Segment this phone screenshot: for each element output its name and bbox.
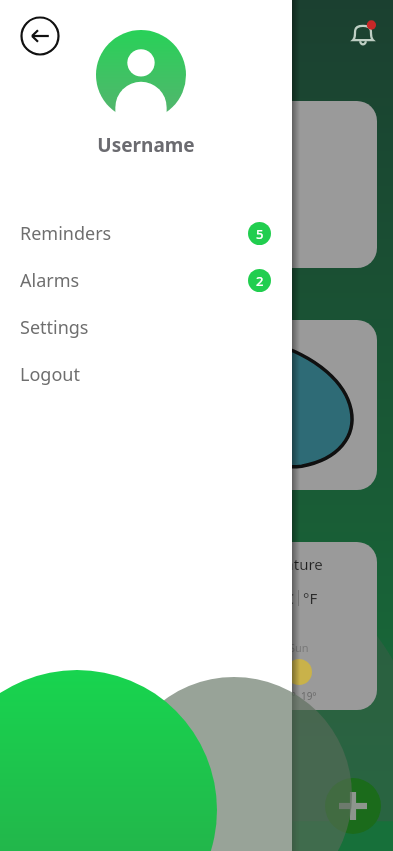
button[interactable]: Alarms	[0, 263, 292, 297]
button[interactable]: Settings	[0, 310, 292, 344]
staticText: Logout	[20, 362, 80, 387]
button[interactable]: MyPlant Rooms	[220, 101, 377, 268]
staticText: Alarms	[20, 268, 80, 293]
staticText: Username	[0, 132, 292, 158]
staticText: 5	[256, 225, 264, 243]
button[interactable]	[220, 320, 377, 490]
staticText: 34° 19°	[280, 689, 317, 703]
staticText: Reminders	[20, 221, 112, 246]
button[interactable]: Add	[325, 778, 381, 834]
staticText: °C	[278, 588, 294, 608]
button[interactable]: Back	[20, 16, 60, 56]
staticText: °F	[303, 588, 318, 608]
staticText: Temperature	[232, 554, 323, 574]
staticText: 2	[256, 272, 264, 290]
button[interactable]: Temperature	[220, 542, 377, 710]
staticText: Settings	[20, 315, 89, 340]
button[interactable]: Logout	[0, 357, 292, 391]
button[interactable]: Reminders	[0, 216, 292, 250]
staticText: Sun	[289, 640, 309, 655]
button[interactable]: Notifications	[339, 10, 387, 58]
